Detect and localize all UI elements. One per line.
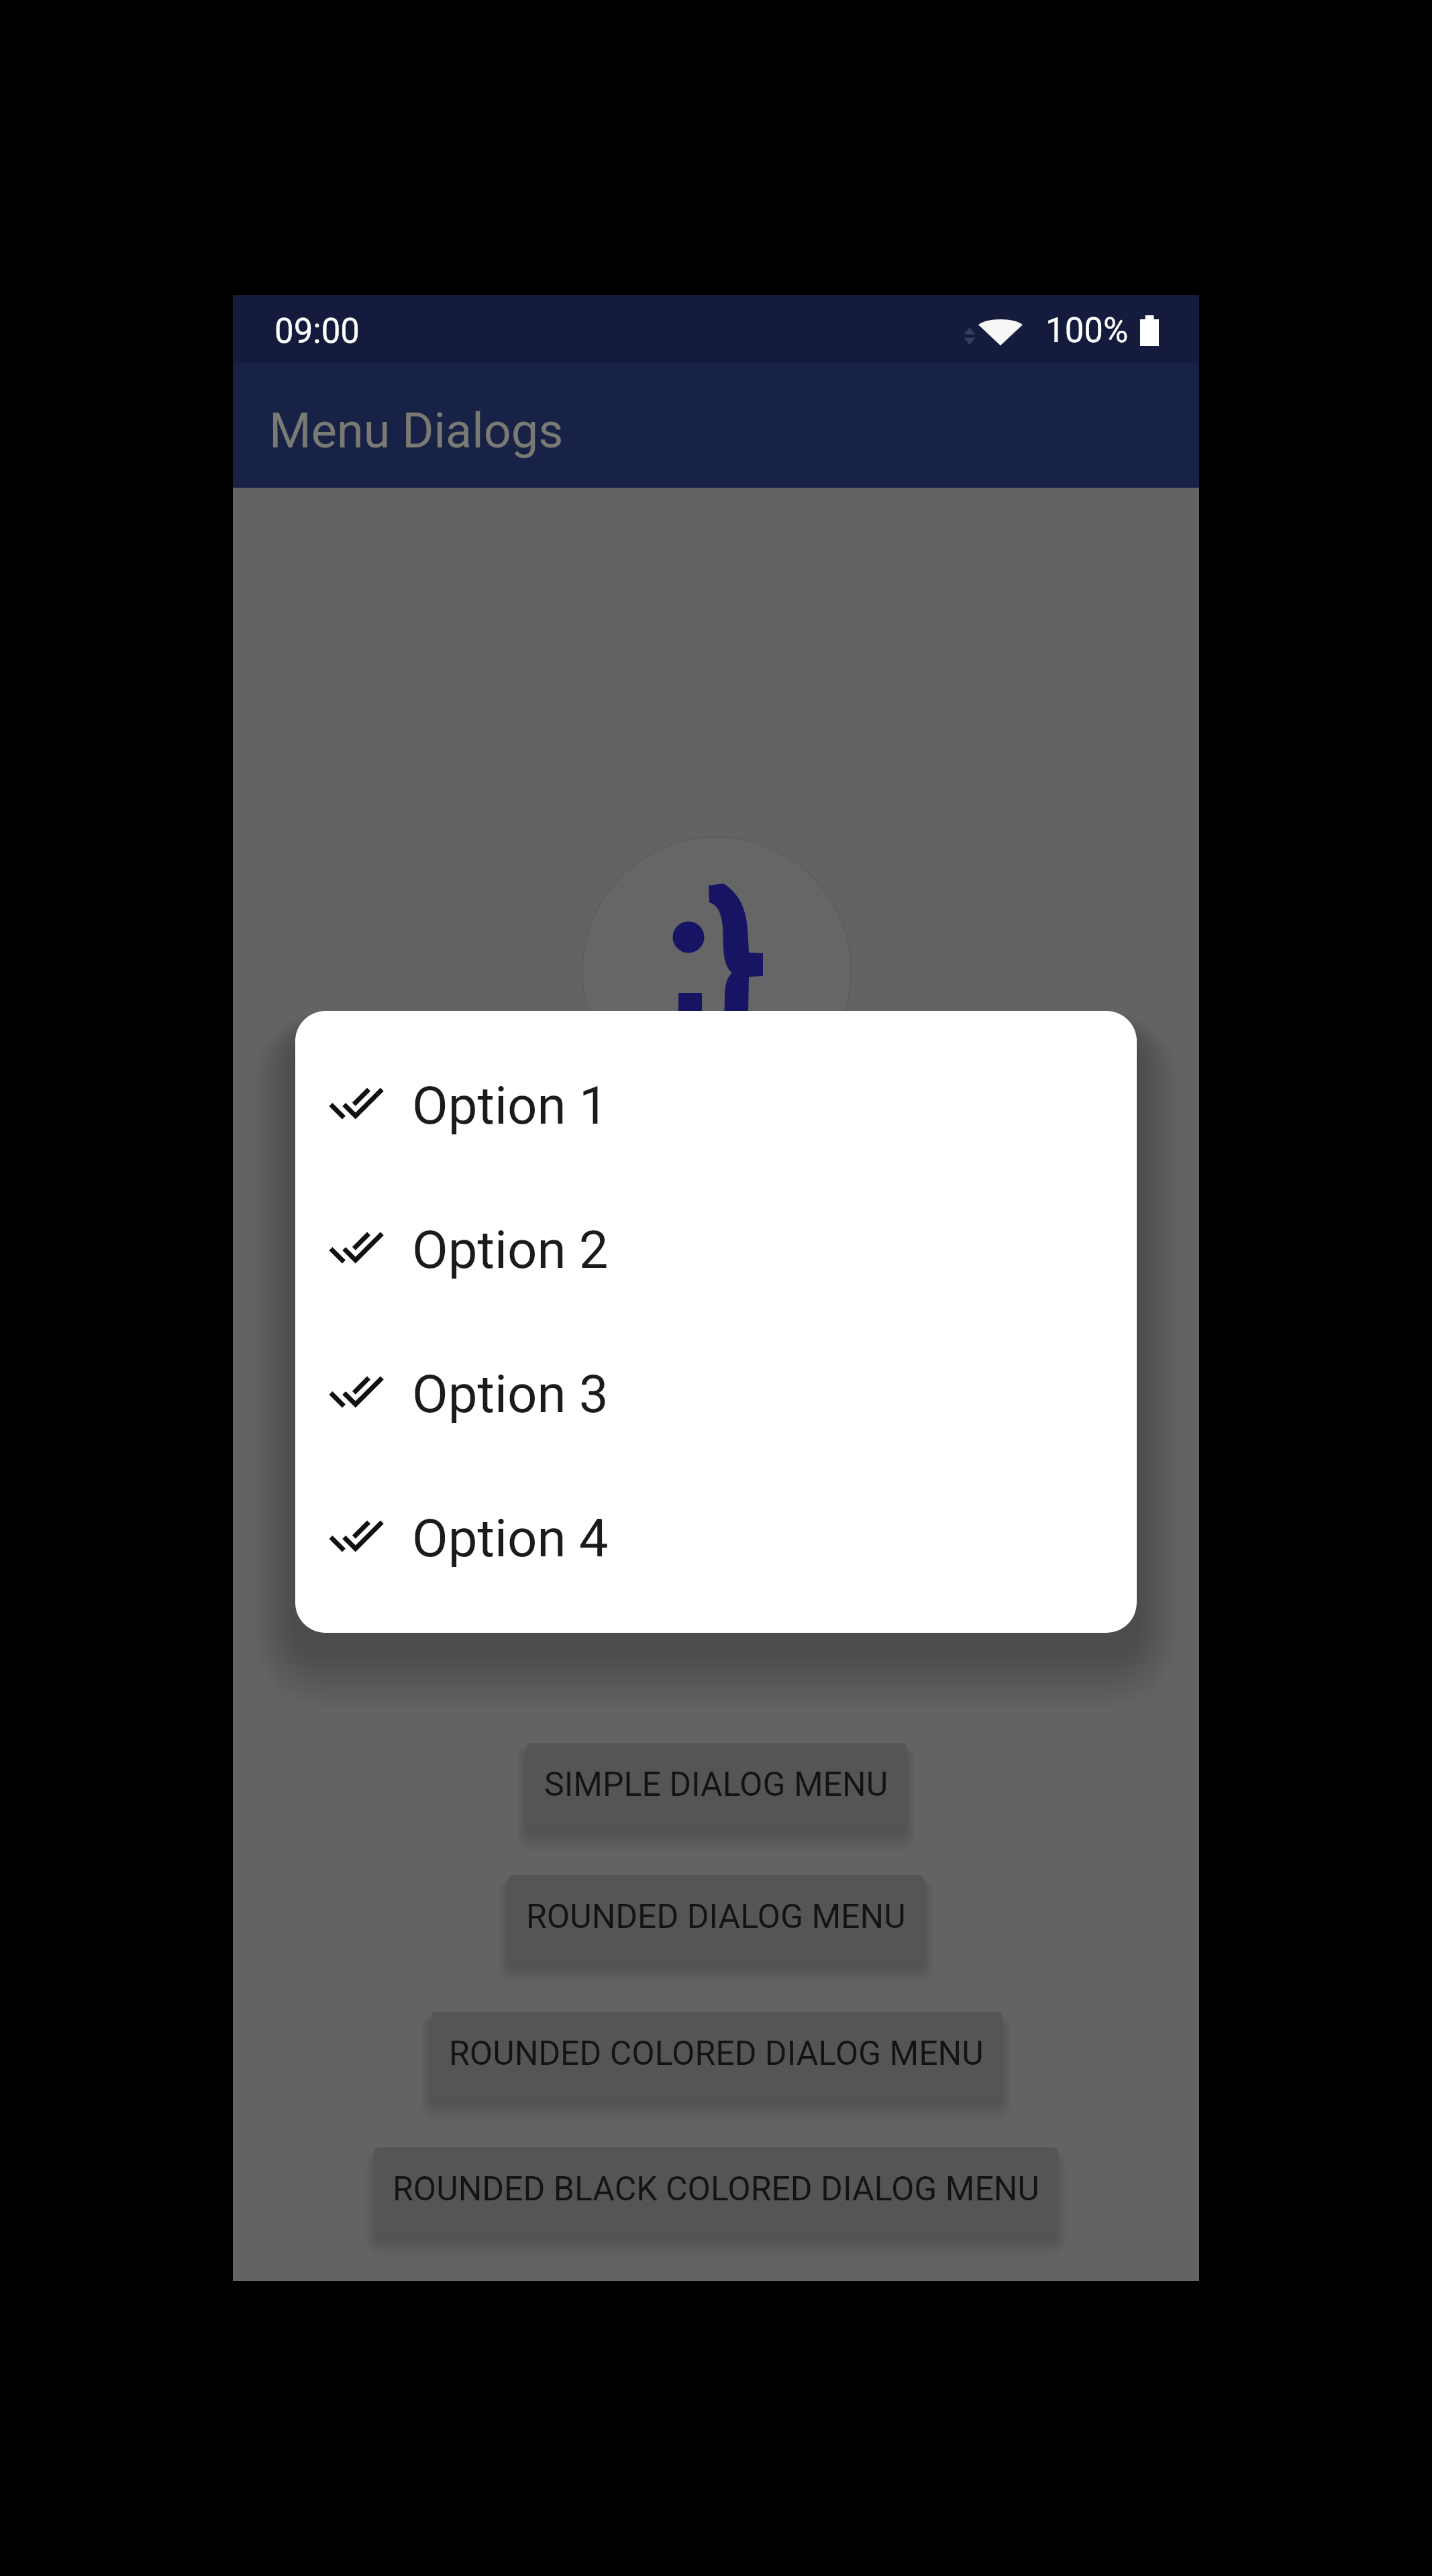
staticText: 100% (1045, 311, 1129, 351)
staticText: ROUNDED DIALOG MENU (526, 1897, 906, 1937)
staticText: ROUNDED BLACK COLORED DIALOG MENU (393, 2169, 1039, 2209)
staticText: SIMPLE DIALOG MENU (544, 1765, 888, 1805)
other: Wi-Fi (964, 315, 1023, 346)
button[interactable]: ROUNDED COLORED DIALOG MENU (431, 2012, 1002, 2095)
button[interactable]: Option 1 (295, 1030, 1137, 1175)
button[interactable]: SIMPLE DIALOG MENU (526, 1743, 907, 1826)
staticText: Option 2 (412, 1220, 609, 1281)
button[interactable]: Option 2 (295, 1175, 1137, 1319)
button[interactable]: Option 4 (295, 1463, 1137, 1607)
button[interactable]: ROUNDED BLACK COLORED DIALOG MENU (374, 2147, 1058, 2231)
staticText: Option 4 (412, 1508, 609, 1569)
staticText: ROUNDED COLORED DIALOG MENU (449, 2034, 984, 2074)
staticText: Menu Dialogs (269, 402, 564, 459)
button[interactable]: ROUNDED DIALOG MENU (508, 1875, 924, 1958)
staticText: Option 1 (412, 1075, 609, 1136)
staticText: Option 3 (412, 1364, 609, 1425)
staticText: 09:00 (274, 311, 360, 352)
button[interactable]: Option 3 (295, 1319, 1137, 1463)
other: Battery (1140, 315, 1159, 346)
